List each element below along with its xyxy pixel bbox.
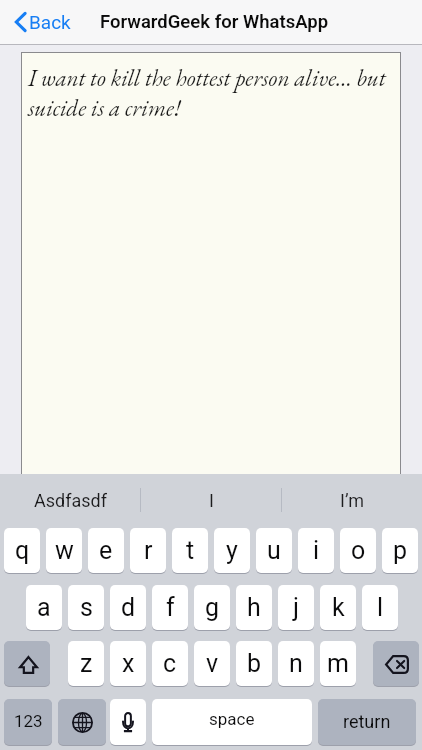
button[interactable]: e [88,528,124,573]
staticText: k [332,593,345,622]
button[interactable]: c [152,641,188,686]
staticText: p [393,536,408,565]
button[interactable]: space [152,699,312,745]
button[interactable]: x [110,641,146,686]
staticText: l [377,593,384,622]
button[interactable]: I [141,474,281,526]
staticText: I [209,490,214,511]
staticText: Asdfasdf [34,490,107,511]
staticText: e [99,536,113,565]
button[interactable]: r [130,528,166,573]
button[interactable]: y [214,528,250,573]
staticText: i [313,536,320,565]
button[interactable]: return [318,699,416,745]
staticText: r [144,536,153,565]
button[interactable]: s [68,585,104,630]
button[interactable]: Change keyboard [58,699,106,745]
staticText: g [205,593,220,622]
staticText: u [267,536,281,565]
staticText: f [166,593,175,622]
staticText: x [122,649,135,678]
staticText: b [247,649,262,678]
button[interactable]: Dictate [110,699,146,745]
staticText: n [289,649,303,678]
button[interactable]: m [320,641,356,686]
button[interactable]: Asdfasdf [0,474,140,526]
staticText: a [37,593,51,622]
button[interactable]: p [382,528,418,573]
button[interactable]: a [26,585,62,630]
button[interactable]: b [236,641,272,686]
button[interactable]: j [278,585,314,630]
staticText: w [55,536,74,565]
button[interactable]: o [340,528,376,573]
button[interactable]: g [194,585,230,630]
staticText: q [15,536,30,565]
button[interactable]: t [172,528,208,573]
staticText: I want to kill the hottest person alive…… [28,63,397,123]
button[interactable]: k [320,585,356,630]
button[interactable]: Back [15,11,71,33]
button[interactable]: i [298,528,334,573]
button[interactable]: h [236,585,272,630]
staticText: d [121,593,136,622]
button[interactable]: z [68,641,104,686]
staticText: j [293,593,299,622]
button[interactable]: v [194,641,230,686]
staticText: y [226,536,238,565]
staticText: m [327,649,349,678]
button[interactable]: f [152,585,188,630]
staticText: s [80,593,93,622]
staticText: z [80,649,93,678]
button[interactable]: l [362,585,398,630]
button[interactable]: 123 [4,699,52,745]
staticText: 123 [14,711,43,731]
button[interactable]: q [4,528,40,573]
staticText: Back [29,11,71,33]
staticText: v [206,649,219,678]
staticText: ForwardGeek for WhatsApp [100,11,329,33]
button[interactable]: I’m [282,474,422,526]
button[interactable]: w [46,528,82,573]
staticText: return [343,711,391,732]
button[interactable]: n [278,641,314,686]
staticText: c [163,649,177,678]
staticText: I’m [340,490,365,511]
staticText: t [186,536,195,565]
staticText: h [247,593,261,622]
button[interactable]: u [256,528,292,573]
button[interactable]: Shift [4,641,50,686]
staticText: space [209,709,255,729]
staticText: o [351,536,366,565]
button[interactable]: d [110,585,146,630]
button[interactable]: Backspace [373,641,419,686]
